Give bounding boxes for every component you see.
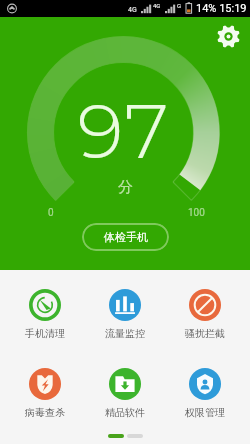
button[interactable]: 体检手机 [82, 223, 169, 251]
button[interactable]: 精品软件 [85, 354, 165, 433]
staticText: 权限管理 [185, 406, 225, 419]
staticText: 4G [128, 6, 137, 14]
staticText: 流量监控 [105, 327, 145, 340]
staticText: 骚扰拦截 [185, 327, 225, 340]
staticText: 97 [77, 84, 171, 177]
button[interactable]: 流量监控 [85, 275, 165, 354]
staticText: 精品软件 [105, 406, 145, 419]
staticText: 14% 15:19 [196, 2, 247, 15]
staticText: 分 [118, 178, 133, 197]
button[interactable]: 病毒查杀 [5, 354, 85, 433]
staticText: 手机清理 [25, 327, 65, 340]
staticText: G [177, 2, 182, 9]
button[interactable]: 骚扰拦截 [165, 275, 245, 354]
staticText: 0 [48, 207, 54, 219]
staticText: 体检手机 [104, 230, 148, 244]
staticText: 病毒查杀 [25, 406, 65, 419]
staticText: 100 [188, 207, 205, 219]
button[interactable]: 权限管理 [165, 354, 245, 433]
staticText: 4G [153, 2, 161, 9]
button[interactable]: Settings [217, 25, 240, 48]
button[interactable]: 手机清理 [5, 275, 85, 354]
